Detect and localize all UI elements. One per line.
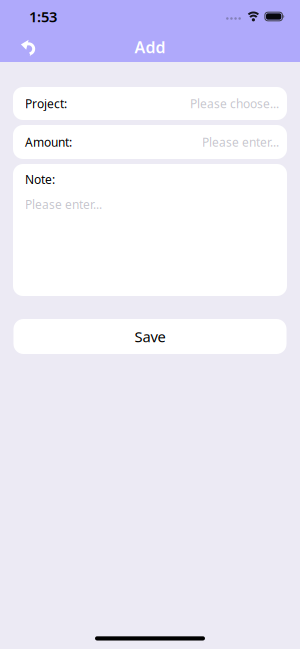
- staticText: Please enter...: [25, 196, 102, 212]
- button[interactable]: Project:: [13, 87, 287, 120]
- staticText: Save: [134, 327, 165, 346]
- staticText: Amount:: [25, 134, 72, 150]
- staticText: Please choose...: [190, 95, 279, 111]
- staticText: Note:: [25, 171, 55, 187]
- staticText: 1:53: [29, 7, 57, 26]
- staticText: Add: [134, 36, 165, 58]
- button[interactable]: Back: [20, 35, 37, 56]
- staticText: Please enter...: [202, 134, 279, 150]
- button[interactable]: Note:: [13, 164, 287, 296]
- staticText: Project:: [25, 95, 67, 111]
- button[interactable]: Amount:: [13, 125, 287, 159]
- button[interactable]: Save: [13, 319, 286, 354]
